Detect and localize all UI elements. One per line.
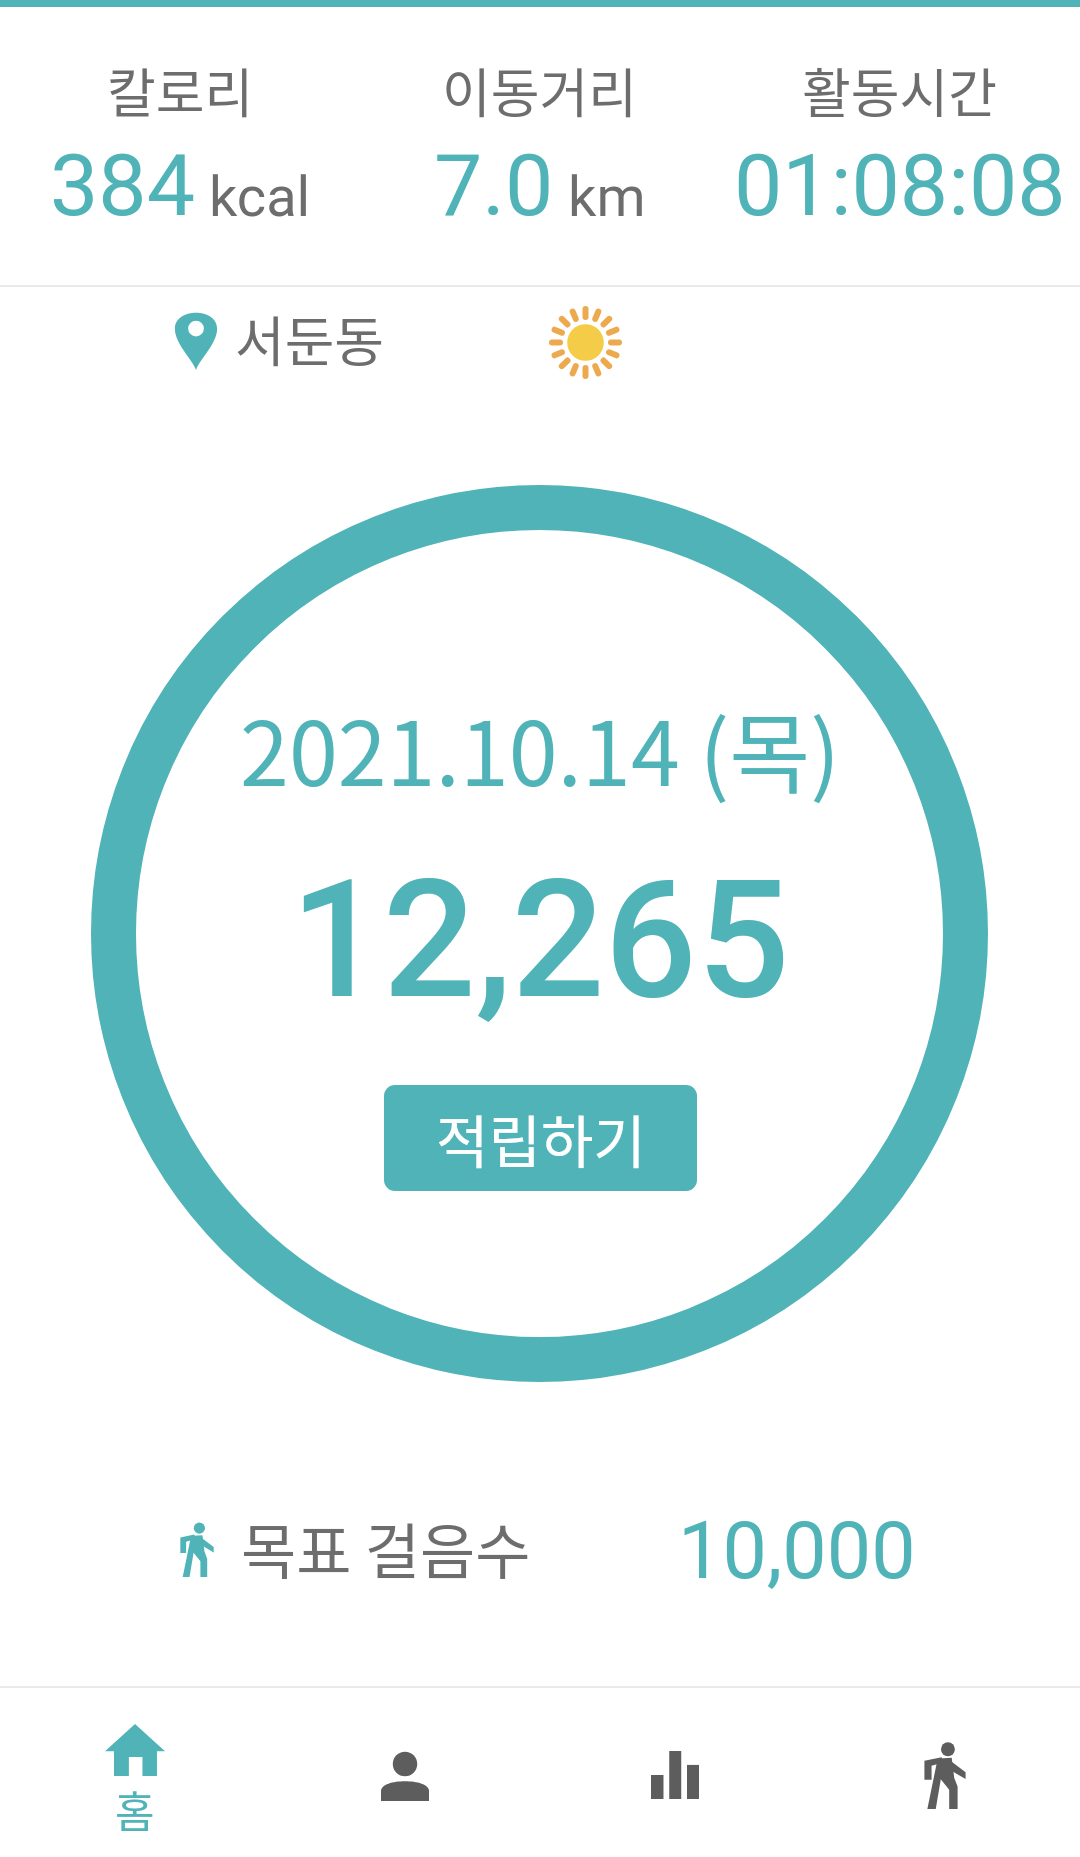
button[interactable]: Home xyxy=(0,1688,270,1857)
other: Profile xyxy=(381,1751,429,1801)
staticText: 384 xyxy=(50,135,195,236)
staticText: 12,265 xyxy=(290,845,790,1036)
button[interactable]: Weather: sunny xyxy=(513,270,658,415)
staticText: 목표 걸음수 xyxy=(241,1504,531,1591)
staticText: km xyxy=(568,164,646,230)
staticText: 10,000 xyxy=(678,1505,916,1598)
staticText: 활동시간 xyxy=(802,52,998,129)
other: Location xyxy=(174,306,218,370)
staticText: 01:08:08 xyxy=(734,135,1066,236)
other: Statistics xyxy=(651,1751,699,1799)
other: Home xyxy=(105,1724,165,1776)
button[interactable]: Activity xyxy=(810,1688,1080,1857)
button[interactable]: Statistics xyxy=(540,1688,810,1857)
staticText: 서둔동 xyxy=(235,299,385,377)
staticText: 7.0 xyxy=(434,135,554,236)
button[interactable]: Location xyxy=(174,299,385,377)
button[interactable]: 적립하기 xyxy=(384,1085,697,1191)
staticText: 이동거리 xyxy=(442,52,638,129)
staticText: 칼로리 xyxy=(107,52,254,129)
button[interactable]: Profile xyxy=(270,1688,540,1857)
staticText: kcal xyxy=(209,164,311,230)
other: Activity xyxy=(924,1743,966,1809)
staticText: 적립하기 xyxy=(436,1097,646,1180)
staticText: 홈 xyxy=(115,1778,155,1840)
staticText: 2021.10.14 (목) xyxy=(240,684,840,811)
